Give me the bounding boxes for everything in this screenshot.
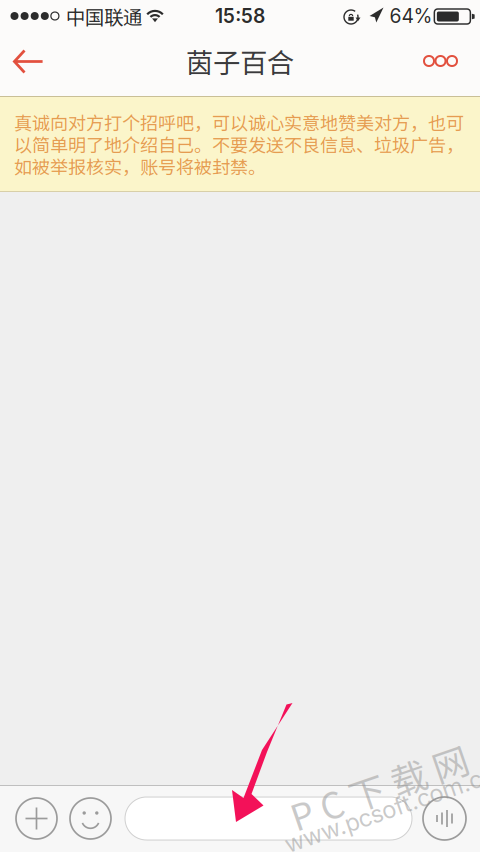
- staticText: www.pcsoft.com.cn: [279, 794, 480, 823]
- staticText: 如被举报核实，账号将被封禁。: [14, 153, 266, 179]
- staticText: 茵子百合: [186, 41, 294, 81]
- staticText: P C 下 载 网: [286, 761, 472, 813]
- staticText: 64%: [389, 4, 432, 28]
- button[interactable]: More options: [406, 34, 480, 96]
- staticText: 真诚向对方打个招呼吧，可以诚心实意地赞美对方，也可: [14, 109, 464, 135]
- button[interactable]: Voice message: [423, 797, 466, 840]
- button[interactable]: Message input: [125, 797, 412, 840]
- staticText: 以简单明了地介绍自己。不要发送不良信息、垃圾广告，: [14, 131, 464, 157]
- button[interactable]: Add attachment: [16, 798, 57, 839]
- staticText: 15:58: [215, 4, 265, 28]
- button[interactable]: Back: [0, 34, 58, 96]
- staticText: 中国联通: [66, 2, 142, 30]
- button[interactable]: Emoji: [70, 798, 111, 839]
